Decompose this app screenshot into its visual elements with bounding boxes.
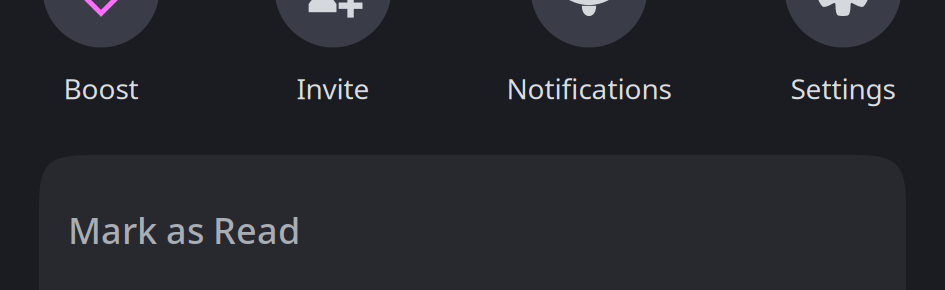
button[interactable]: Invite — [274, 0, 391, 106]
staticText: Mark as Read — [68, 206, 300, 254]
button[interactable]: Notifications — [530, 0, 647, 106]
button[interactable]: Settings — [784, 0, 901, 106]
staticText: Notifications — [506, 70, 671, 107]
button[interactable]: Mark as Read — [39, 155, 906, 290]
button[interactable]: Boost — [42, 0, 159, 106]
staticText: Boost — [63, 70, 138, 107]
staticText: Invite — [296, 70, 369, 107]
staticText: Settings — [790, 70, 895, 107]
